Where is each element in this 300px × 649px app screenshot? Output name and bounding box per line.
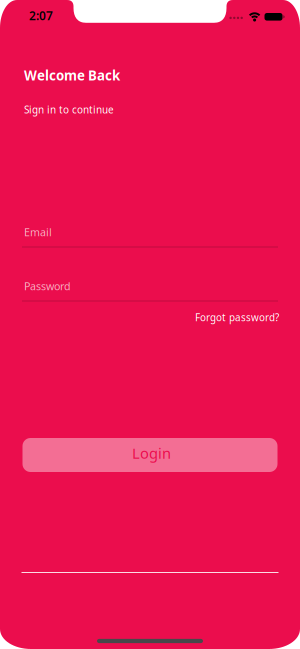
staticText: Email: [24, 225, 52, 239]
staticText: 2:07: [29, 7, 53, 23]
staticText: Sign in to continue: [24, 103, 114, 116]
button[interactable]: Forgot password?: [79, 311, 279, 324]
staticText: Password: [24, 279, 71, 293]
staticText: Forgot password?: [195, 311, 279, 324]
staticText: Login: [132, 443, 171, 463]
button[interactable]: Login: [22, 438, 277, 472]
staticText: Welcome Back: [24, 66, 120, 84]
button[interactable]: Password: [22, 270, 278, 302]
button[interactable]: Email: [22, 216, 278, 248]
